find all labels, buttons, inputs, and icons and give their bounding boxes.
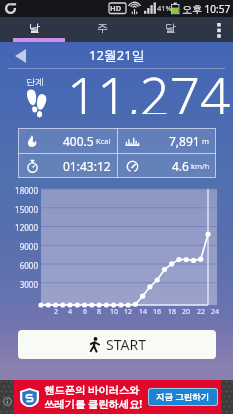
staticText: 24 (207, 307, 223, 317)
staticText: 6 (77, 307, 93, 317)
staticText: 10 (106, 307, 122, 317)
staticText: 11,274 (67, 59, 231, 114)
staticText: 14 (135, 307, 151, 317)
staticText: 22 (193, 307, 209, 317)
staticText: 지금 그린하기 (156, 391, 210, 403)
staticText: 오후 10:57 (182, 2, 231, 16)
staticText: 15000 (0, 204, 38, 215)
button[interactable]: 4.6 (118, 154, 216, 178)
button[interactable]: 날 (0, 17, 68, 42)
staticText: 400.5 (63, 133, 94, 149)
staticText: 18 (164, 307, 180, 317)
staticText: 주 (97, 21, 108, 35)
staticText: START (106, 335, 146, 354)
staticText: 01:43:12 (63, 158, 111, 174)
staticText: 달 (165, 21, 176, 35)
staticText: 4.6 (172, 158, 189, 174)
button[interactable]: 핸드폰의 바이러스와 (14, 380, 221, 414)
staticText: 4 (62, 307, 78, 317)
staticText: 12 (120, 307, 136, 317)
button[interactable]: 달 (136, 17, 204, 42)
button[interactable]: 주 (68, 17, 136, 42)
staticText: 쓰레기를 클린하세요! (44, 397, 143, 411)
staticText: 20 (178, 307, 194, 317)
staticText: 핸드폰의 바이러스와 (44, 383, 140, 397)
staticText: 41% (157, 3, 172, 13)
button[interactable]: 400.5 (18, 128, 117, 153)
button[interactable]: More options (204, 17, 233, 42)
staticText: 12000 (0, 222, 38, 233)
button[interactable]: 01:43:12 (18, 154, 117, 178)
staticText: 12월21일 (89, 46, 145, 64)
staticText: 날 (29, 21, 40, 35)
staticText: 18000 (0, 185, 38, 196)
staticText: 16 (149, 307, 165, 317)
button[interactable]: Ad info (3, 397, 12, 406)
staticText: 8 (91, 307, 107, 317)
staticText: HD (110, 3, 122, 13)
staticText: 2 (48, 307, 64, 317)
staticText: 9000 (0, 241, 38, 252)
staticText: 3000 (0, 279, 38, 290)
button[interactable]: 지금 그린하기 (149, 389, 217, 405)
staticText: 6000 (0, 260, 38, 271)
staticText: 단계 (26, 76, 44, 87)
staticText: m (202, 136, 210, 146)
button[interactable]: 7,891 (118, 128, 216, 153)
staticText: 7,891 (169, 133, 200, 149)
staticText: Kcal (96, 136, 111, 146)
staticText: km/h (191, 161, 210, 171)
button[interactable]: START (18, 330, 216, 359)
button[interactable]: Previous day (9, 45, 31, 67)
